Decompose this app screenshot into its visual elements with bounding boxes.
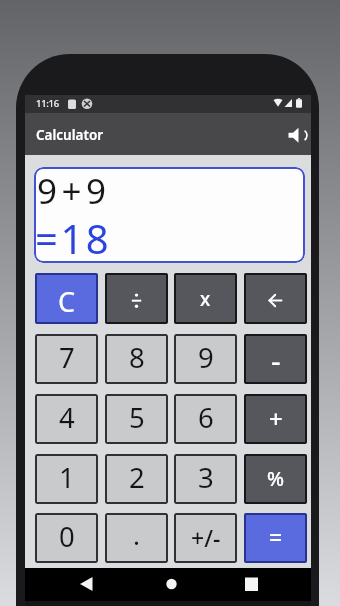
staticText: . — [133, 517, 140, 552]
button[interactable]: 3 — [174, 454, 237, 504]
button[interactable] — [223, 568, 278, 601]
staticText: 9+9 — [37, 167, 111, 215]
button[interactable]: - — [244, 334, 307, 384]
button[interactable]: 2 — [105, 454, 168, 504]
button[interactable]: 6 — [174, 394, 237, 444]
staticText: + — [269, 402, 283, 435]
button[interactable]: . — [105, 513, 168, 563]
button[interactable] — [105, 273, 168, 324]
staticText: % — [267, 465, 285, 492]
button[interactable]: + — [244, 394, 307, 444]
button[interactable]: 9 — [174, 334, 237, 384]
button[interactable]: = — [244, 513, 307, 563]
button[interactable]: +/- — [174, 513, 237, 563]
staticText: 8 — [129, 339, 145, 376]
button[interactable] — [65, 568, 120, 601]
staticText: = — [269, 521, 283, 552]
button[interactable]: 7 — [35, 334, 98, 384]
button[interactable] — [144, 568, 199, 601]
button[interactable]: 4 — [35, 394, 98, 444]
staticText: 0 — [59, 518, 75, 555]
staticText: Calculator — [36, 126, 104, 144]
button[interactable]: 0 — [35, 513, 98, 563]
staticText: 9 — [198, 339, 214, 376]
staticText: 6 — [198, 399, 214, 436]
staticText: 1 — [59, 459, 75, 496]
button[interactable]: 1 — [35, 454, 98, 504]
staticText: 3 — [198, 459, 214, 496]
button[interactable] — [244, 273, 307, 324]
button[interactable]: C — [35, 273, 98, 324]
button[interactable]: Calculator — [25, 113, 311, 155]
staticText: x — [200, 286, 211, 312]
staticText: - — [271, 340, 281, 381]
staticText: C — [58, 283, 76, 320]
staticText: 11:16 — [36, 97, 59, 110]
staticText: +/- — [191, 522, 221, 553]
staticText: 4 — [59, 399, 75, 436]
button[interactable]: 5 — [105, 394, 168, 444]
button[interactable]: % — [244, 454, 307, 504]
button[interactable]: 8 — [105, 334, 168, 384]
staticText: 2 — [129, 459, 145, 496]
button[interactable]: x — [174, 273, 237, 324]
staticText: =18 — [35, 211, 112, 263]
staticText: 5 — [129, 399, 145, 436]
staticText: 7 — [59, 339, 75, 376]
